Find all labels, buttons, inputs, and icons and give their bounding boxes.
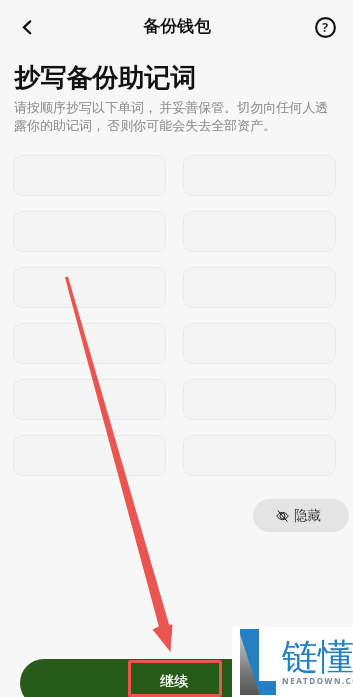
button[interactable] [13,379,166,420]
button[interactable]: 隐藏 [253,499,349,532]
button[interactable]: Help [306,8,344,46]
button[interactable] [13,323,166,364]
staticText: 备份钱包 [143,16,211,37]
staticText: 请按顺序抄写以下单词， 并妥善保管。切勿向任何人透 露你的助记词， 否则你可能会… [14,98,329,134]
staticText: 链懂 [282,634,353,679]
staticText: NEATDOWN.COM [282,675,353,686]
staticText: 继续 [160,673,188,691]
button[interactable]: Back [8,8,46,46]
button[interactable] [13,435,166,476]
button[interactable] [13,267,166,308]
button[interactable]: 继续 [20,659,333,697]
staticText: 抄写备份助记词 [14,62,196,95]
staticText: 隐藏 [294,507,321,524]
staticText: ? [322,18,329,36]
